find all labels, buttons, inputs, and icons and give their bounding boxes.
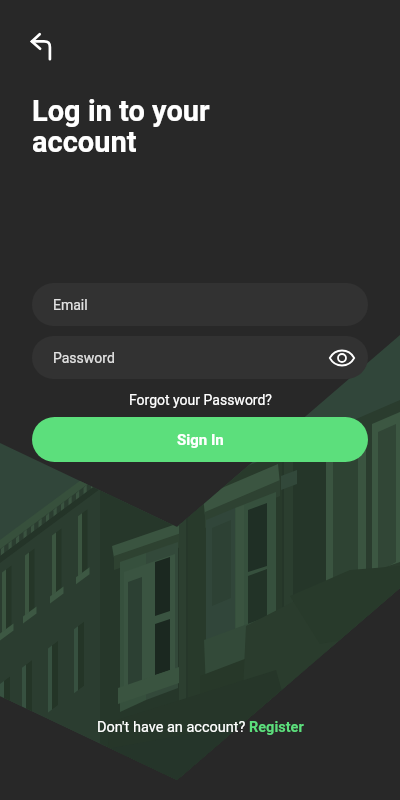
staticText: Log in to your account	[32, 94, 210, 159]
button[interactable]: Password	[32, 336, 368, 379]
button[interactable]: Back	[20, 22, 64, 66]
button[interactable]: Email	[32, 283, 368, 326]
button[interactable]: Show password	[326, 342, 358, 374]
staticText: Password	[53, 350, 115, 366]
button[interactable]: Sign In	[32, 417, 368, 462]
staticText: Email	[53, 297, 88, 313]
button[interactable]: Register	[249, 719, 304, 736]
button[interactable]: Forgot your Password?	[0, 390, 400, 410]
staticText: Don't have an account?	[97, 719, 249, 736]
staticText: Forgot your Password?	[129, 392, 272, 408]
staticText: Register	[249, 719, 304, 736]
staticText: Sign In	[177, 431, 224, 449]
